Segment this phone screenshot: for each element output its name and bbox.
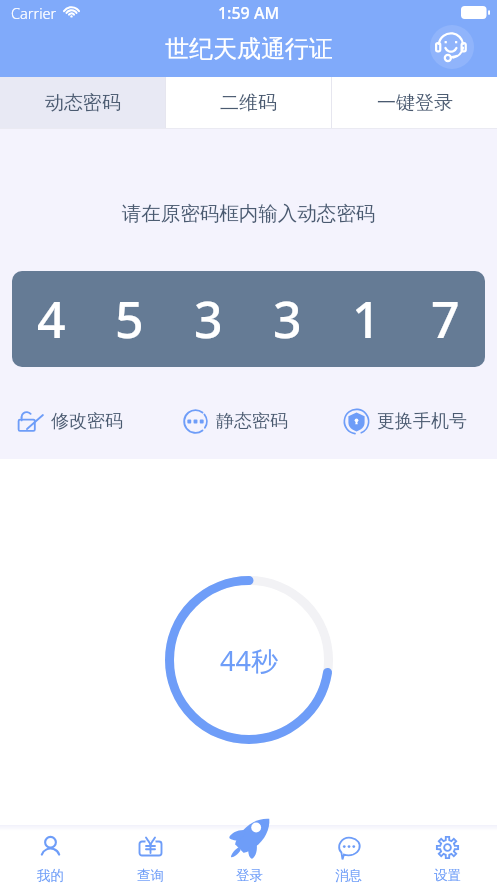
button[interactable]: 更换手机号 [343, 404, 467, 438]
button[interactable]: 动态密码 [0, 77, 165, 128]
button[interactable]: 消息 [299, 825, 398, 883]
staticText: 查询 [137, 867, 164, 883]
staticText: 修改密码 [51, 410, 123, 433]
button[interactable]: Customer service [430, 25, 474, 69]
button[interactable]: 登录 [200, 825, 299, 883]
staticText: 3 [194, 285, 223, 353]
staticText: 二维码 [220, 91, 277, 115]
staticText: 动态密码 [45, 91, 121, 115]
staticText: 1:59 AM [0, 2, 497, 24]
staticText: 4 [37, 285, 66, 353]
staticText: 我的 [37, 867, 64, 883]
staticText: 设置 [434, 867, 461, 883]
button[interactable]: 修改密码 [17, 404, 123, 438]
button[interactable]: 我的 [0, 825, 100, 883]
staticText: Carrier [11, 3, 57, 22]
staticText: 44秒 [220, 642, 278, 679]
staticText: 7 [431, 285, 460, 353]
staticText: 1 [352, 285, 381, 353]
button[interactable]: 一键登录 [332, 77, 497, 128]
staticText: 更换手机号 [377, 410, 467, 433]
staticText: 一键登录 [377, 91, 453, 115]
button[interactable]: 静态密码 [182, 404, 288, 438]
button[interactable]: 二维码 [166, 77, 331, 128]
button[interactable]: 查询 [100, 825, 200, 883]
staticText: 消息 [335, 867, 362, 883]
staticText: 请在原密码框内输入动态密码 [0, 201, 497, 226]
button[interactable]: 设置 [398, 825, 497, 883]
staticText: 静态密码 [216, 410, 288, 433]
staticText: 5 [115, 285, 144, 353]
staticText: 登录 [236, 867, 263, 883]
staticText: 3 [273, 285, 302, 353]
staticText: 世纪天成通行证 [165, 34, 333, 64]
